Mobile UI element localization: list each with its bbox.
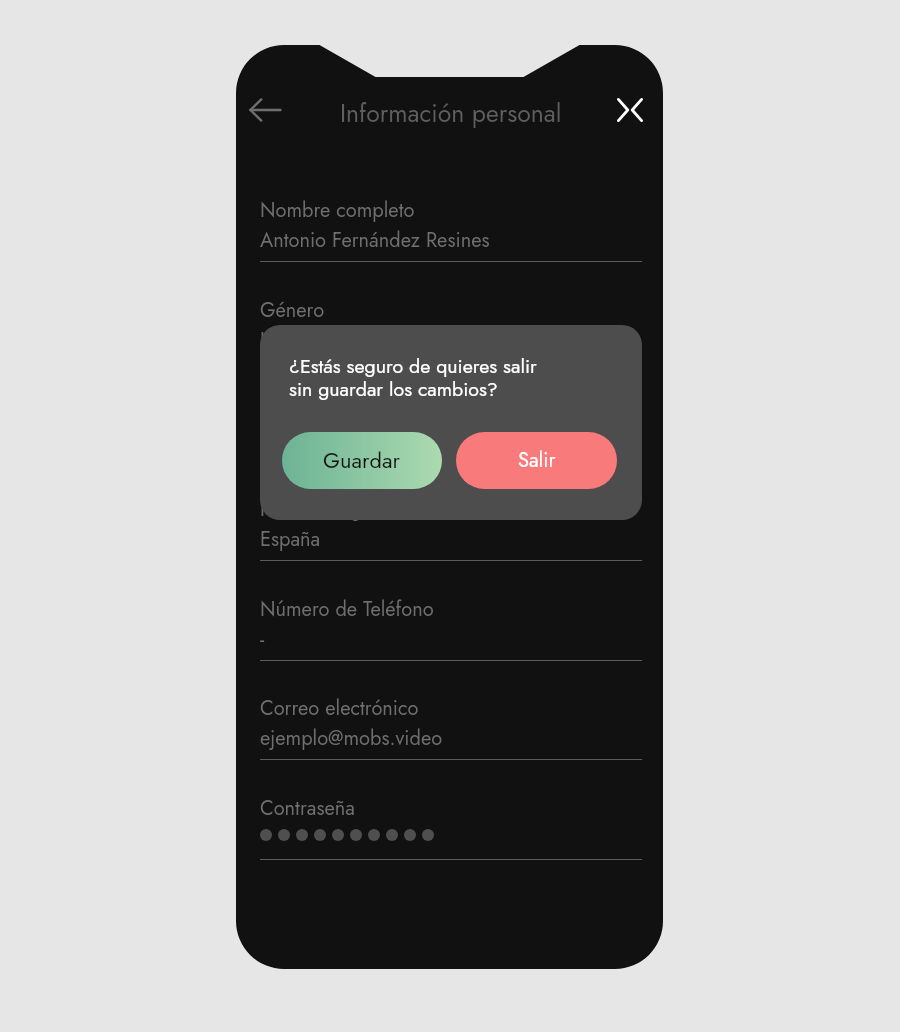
staticText: - (260, 625, 265, 654)
staticText: Información personal (340, 95, 562, 131)
button[interactable]: Close (608, 88, 652, 132)
staticText: ejemplo@mobs.video (260, 724, 443, 753)
staticText: Nombre completo (260, 196, 415, 225)
staticText: Antonio Fernández Resines (260, 226, 490, 255)
button[interactable]: Guardar (282, 432, 442, 489)
staticText: España (260, 525, 321, 554)
button[interactable]: Back (236, 88, 294, 132)
staticText: Salir (518, 446, 556, 475)
staticText: Género (260, 296, 325, 325)
staticText: Contraseña (260, 794, 355, 823)
staticText: Fecha de nacimiento (260, 395, 436, 424)
staticText: Guardar (323, 445, 401, 477)
button[interactable]: Salir (456, 432, 617, 489)
staticText: Correo electrónico (260, 694, 419, 723)
staticText: 12/05/1975 (260, 425, 366, 454)
staticText: ¿Estás seguro de quieres salir sin guard… (289, 352, 537, 403)
staticText: Hombre (260, 326, 330, 355)
staticText: País de origen (260, 495, 383, 524)
staticText: Número de Teléfono (260, 595, 434, 624)
